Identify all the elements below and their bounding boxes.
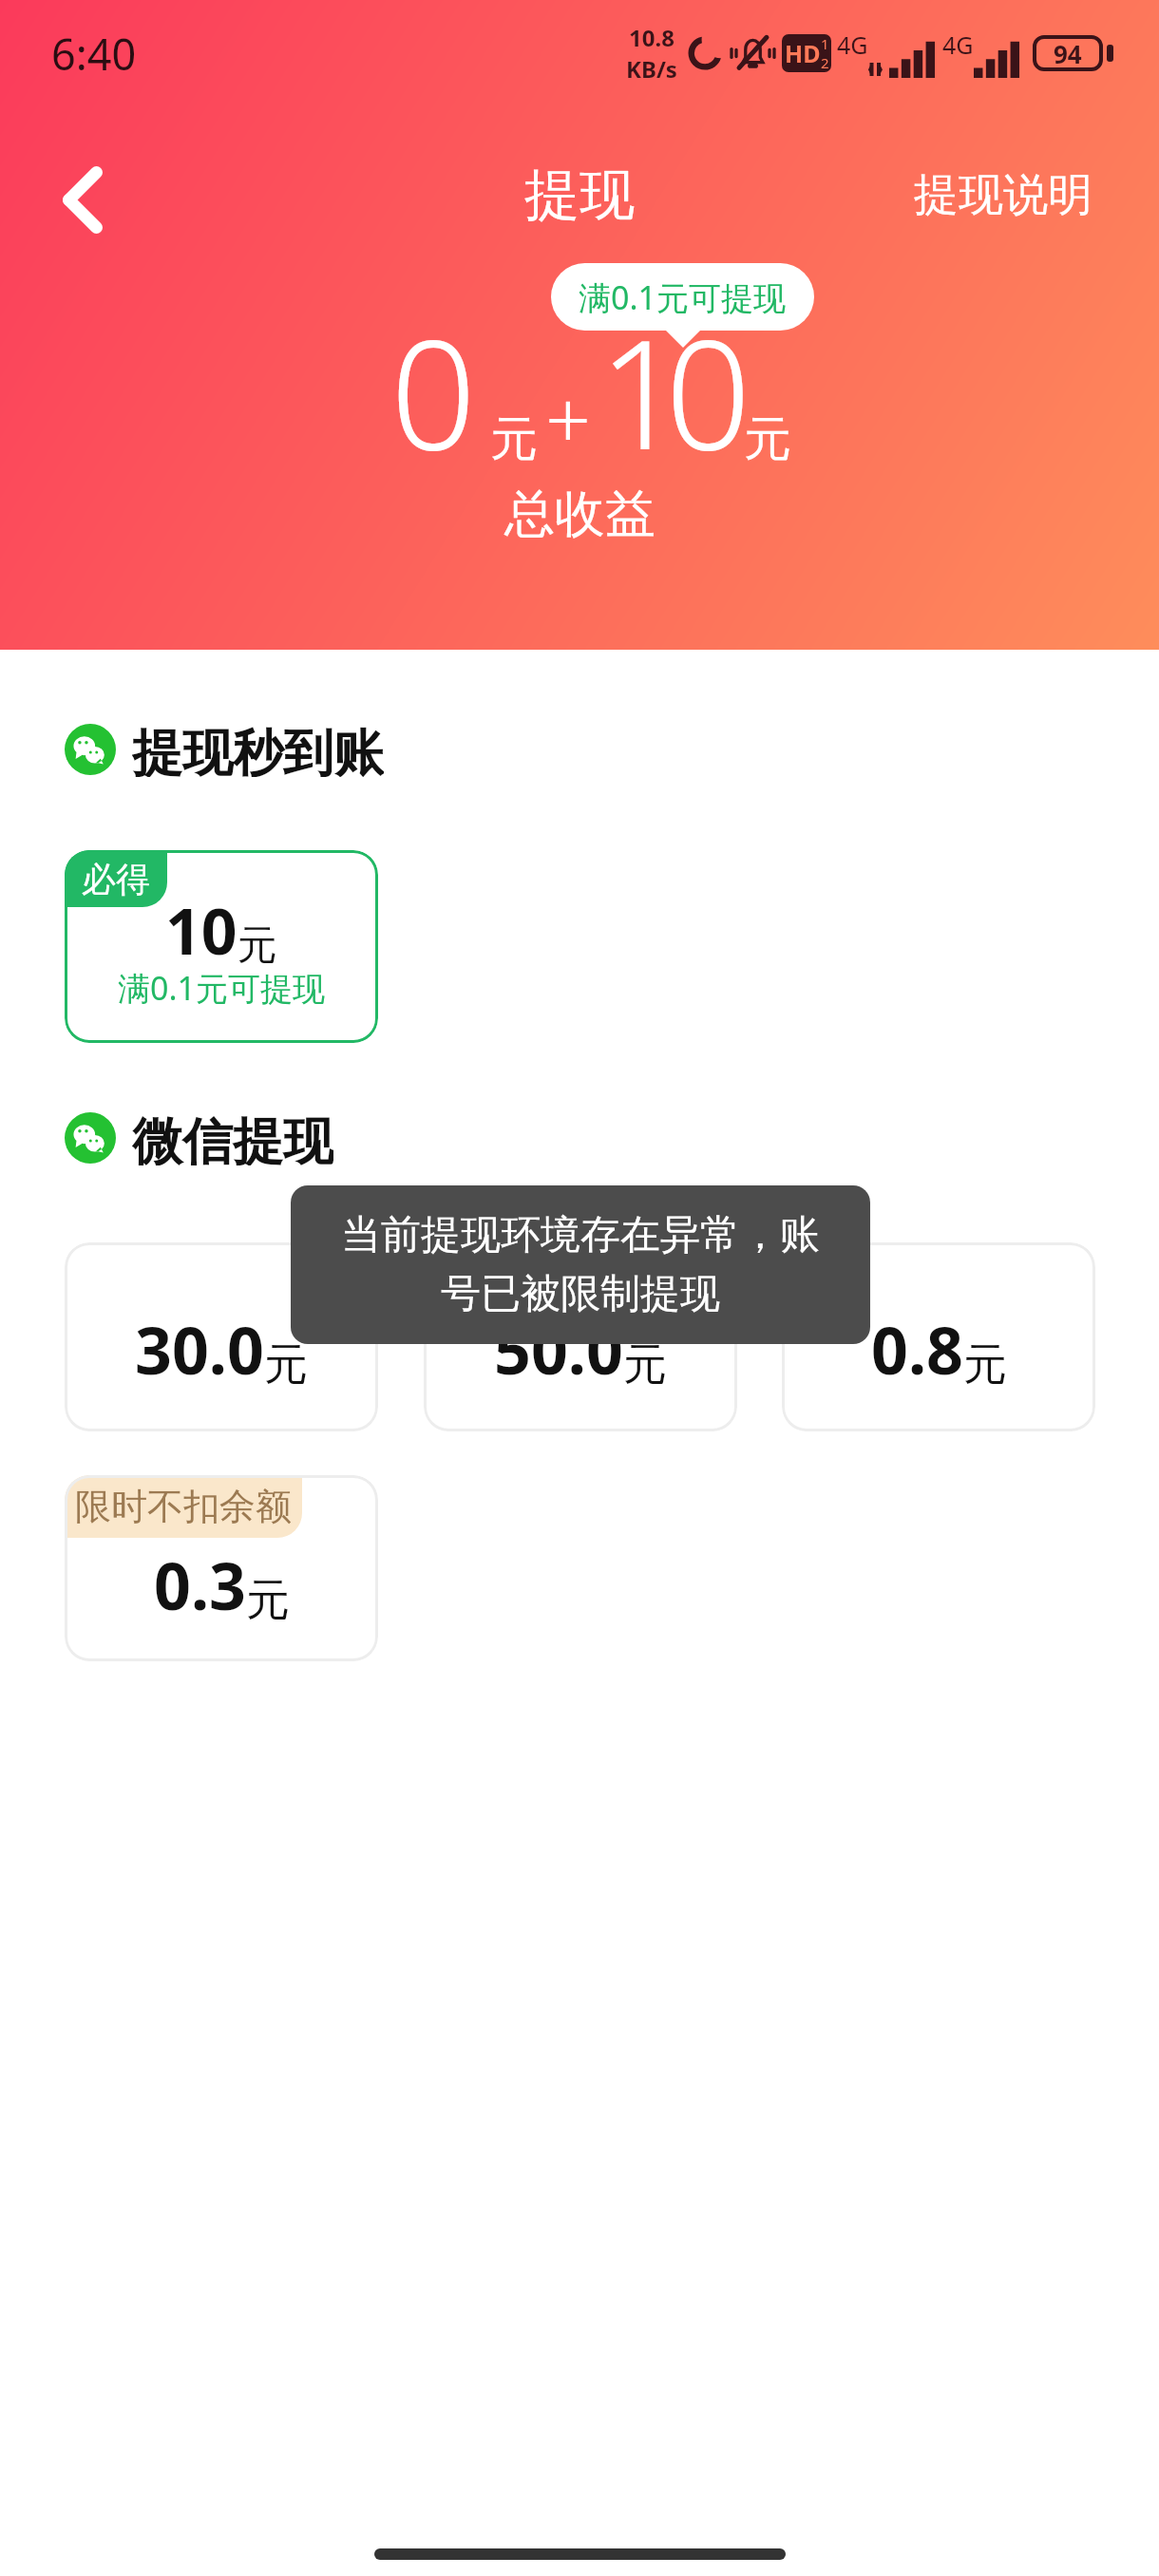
button[interactable]: 30.0 bbox=[65, 1242, 378, 1431]
staticText: 元 bbox=[246, 1573, 290, 1628]
staticText: 元 bbox=[744, 409, 791, 469]
staticText: 4G bbox=[942, 28, 974, 61]
staticText: 50.0 bbox=[494, 1305, 623, 1393]
button[interactable]: 0.3 bbox=[65, 1475, 378, 1661]
staticText: 当前提现环境存在异常，账号已被限制提现 bbox=[325, 1210, 836, 1319]
button[interactable]: Back bbox=[30, 142, 135, 247]
button[interactable]: 50.0 bbox=[424, 1242, 737, 1431]
staticText: 限时不扣余额 bbox=[75, 1484, 292, 1529]
staticText: 元 bbox=[264, 1337, 308, 1392]
staticText: 0.3 bbox=[154, 1541, 246, 1629]
staticText: KB/s bbox=[626, 53, 677, 85]
staticText: 满0.1元可提现 bbox=[579, 275, 787, 319]
staticText: 0.8 bbox=[871, 1305, 963, 1393]
staticText: 1 bbox=[821, 34, 829, 53]
staticText: 10 bbox=[598, 289, 732, 493]
staticText: 元 bbox=[963, 1337, 1007, 1392]
staticText: 满0.1元可提现 bbox=[118, 966, 326, 1010]
staticText: 2 bbox=[821, 53, 829, 72]
staticText: 0 bbox=[390, 289, 477, 493]
staticText: 94 bbox=[1054, 37, 1082, 70]
staticText: 元 bbox=[490, 409, 538, 469]
staticText: 提现秒到账 bbox=[132, 722, 384, 777]
staticText: 微信提现 bbox=[132, 1110, 333, 1165]
button[interactable]: 0.8 bbox=[782, 1242, 1095, 1431]
staticText: 4G bbox=[837, 28, 868, 61]
staticText: HD bbox=[785, 37, 821, 69]
button[interactable]: 提现说明 bbox=[876, 148, 1159, 242]
staticText: + bbox=[545, 364, 591, 472]
staticText: 10.8 bbox=[629, 22, 674, 53]
staticText: 元 bbox=[237, 920, 277, 971]
staticText: 总收益 bbox=[504, 483, 655, 546]
staticText: 6:40 bbox=[51, 25, 137, 83]
button[interactable]: 10 bbox=[65, 850, 378, 1043]
staticText: 提现 bbox=[524, 161, 635, 230]
staticText: 必得 bbox=[82, 858, 150, 900]
staticText: 10 bbox=[165, 887, 237, 973]
staticText: 提现说明 bbox=[914, 167, 1092, 223]
staticText: 元 bbox=[623, 1337, 667, 1392]
staticText: 30.0 bbox=[135, 1305, 264, 1393]
